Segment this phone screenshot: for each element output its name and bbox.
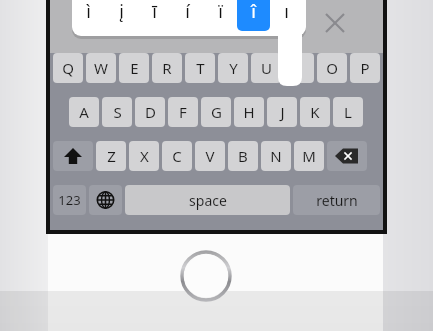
staticText: O <box>326 58 338 78</box>
staticText: K <box>310 102 320 122</box>
staticText: P <box>360 58 370 78</box>
staticText: A <box>79 102 89 122</box>
staticText: E <box>130 58 139 78</box>
button[interactable]: B <box>228 141 258 171</box>
staticText: 123 <box>58 191 81 209</box>
button[interactable]: Home <box>178 248 234 304</box>
button[interactable]: Q <box>53 53 83 83</box>
staticText: N <box>270 146 282 166</box>
button[interactable]: I <box>284 53 314 83</box>
staticText: U <box>261 58 272 78</box>
button[interactable]: í <box>171 0 204 31</box>
button[interactable]: O <box>317 53 347 83</box>
button[interactable]: Switch keyboard <box>89 185 122 215</box>
button[interactable]: H <box>234 97 264 127</box>
button[interactable]: U <box>251 53 281 83</box>
staticText: G <box>211 102 222 122</box>
staticText: X <box>140 146 149 166</box>
button[interactable]: S <box>102 97 132 127</box>
button[interactable]: į <box>105 0 138 31</box>
button[interactable]: 123 <box>53 185 86 215</box>
staticText: M <box>302 146 316 166</box>
button[interactable]: ī <box>138 0 171 31</box>
button[interactable]: M <box>294 141 324 171</box>
staticText: B <box>238 146 248 166</box>
staticText: F <box>179 102 187 122</box>
staticText: Z <box>107 146 116 166</box>
button[interactable]: C <box>162 141 192 171</box>
staticText: į <box>119 0 124 24</box>
button[interactable]: K <box>300 97 330 127</box>
staticText: S <box>113 102 122 122</box>
staticText: W <box>94 58 108 78</box>
button[interactable]: Delete <box>327 141 367 171</box>
staticText: J <box>280 102 285 122</box>
button[interactable]: Shift <box>53 141 93 171</box>
staticText: î <box>251 0 256 24</box>
button[interactable]: V <box>195 141 225 171</box>
button[interactable]: A <box>69 97 99 127</box>
button[interactable]: J <box>267 97 297 127</box>
button[interactable]: L <box>333 97 363 127</box>
button[interactable]: ì <box>72 0 105 31</box>
staticText: V <box>205 146 215 166</box>
staticText: R <box>162 58 172 78</box>
staticText: ì <box>86 0 91 24</box>
button[interactable]: î <box>237 0 270 31</box>
button[interactable]: Z <box>96 141 126 171</box>
staticText: return <box>316 191 358 210</box>
staticText: í <box>185 0 190 24</box>
button[interactable]: N <box>261 141 291 171</box>
button[interactable]: P <box>350 53 380 83</box>
staticText: ı <box>284 0 289 24</box>
staticText: D <box>145 102 156 122</box>
staticText: Q <box>62 58 74 78</box>
button[interactable]: E <box>119 53 149 83</box>
button[interactable]: ı <box>270 0 303 31</box>
staticText: L <box>344 102 352 122</box>
button[interactable]: R <box>152 53 182 83</box>
staticText: C <box>172 146 182 166</box>
button[interactable]: W <box>86 53 116 83</box>
button[interactable]: Close <box>318 6 352 40</box>
staticText: H <box>243 102 255 122</box>
button[interactable]: T <box>185 53 215 83</box>
button[interactable]: F <box>168 97 198 127</box>
button[interactable]: return <box>293 185 380 215</box>
staticText: ī <box>152 0 157 24</box>
staticText: space <box>189 191 227 210</box>
button[interactable]: ï <box>204 0 237 31</box>
button[interactable]: X <box>129 141 159 171</box>
button[interactable]: G <box>201 97 231 127</box>
staticText: T <box>196 58 205 78</box>
button[interactable]: D <box>135 97 165 127</box>
button[interactable]: space <box>125 185 290 215</box>
button[interactable]: Y <box>218 53 248 83</box>
staticText: Y <box>229 58 238 78</box>
staticText: ï <box>218 0 223 24</box>
